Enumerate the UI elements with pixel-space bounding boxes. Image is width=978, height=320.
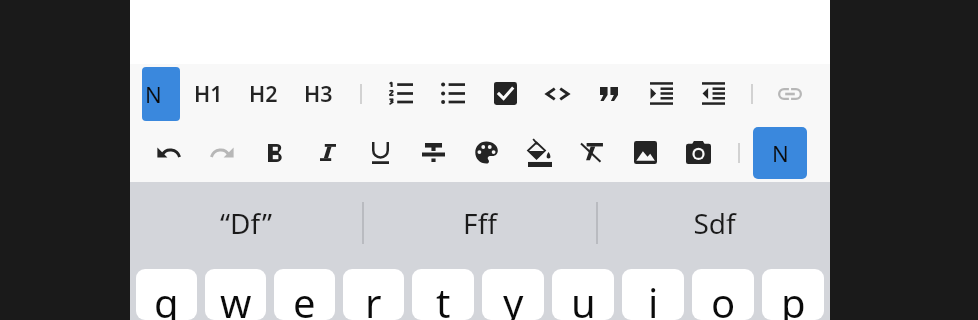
button[interactable]: Redo [195,123,248,182]
staticText: i [648,275,659,320]
button[interactable]: i [622,269,684,320]
button[interactable]: Text colour [460,123,513,182]
staticText: H1 [194,79,223,108]
button[interactable]: Italic [301,123,354,182]
staticText: “Df” [220,204,272,242]
button[interactable]: y [482,269,544,320]
button[interactable]: Fff [364,182,596,264]
staticText: H2 [249,79,278,108]
button[interactable]: o [692,269,754,320]
staticText: N [772,138,789,168]
button[interactable]: “Df” [130,182,362,264]
button[interactable]: q [136,269,197,320]
button[interactable]: H1 [180,64,236,123]
button[interactable]: Insert link [764,64,816,123]
staticText: N [145,79,162,109]
button[interactable]: Strikethrough [407,123,460,182]
staticText: o [711,275,736,320]
button[interactable]: Underline [354,123,407,182]
button[interactable]: Numbered list [375,64,427,123]
button[interactable]: H2 [236,64,291,123]
button[interactable]: e [274,269,335,320]
button[interactable]: p [762,269,824,320]
button[interactable]: H3 [291,64,346,123]
button[interactable]: Decrease indent [687,64,739,123]
button[interactable]: Block quote [583,64,635,123]
staticText: u [571,275,596,320]
button[interactable]: Undo [142,123,195,182]
staticText: Sdf [693,204,736,242]
button[interactable]: Highlight colour [513,123,566,182]
staticText: y [503,275,524,320]
button[interactable]: r [343,269,404,320]
staticText: t [436,275,451,320]
staticText: w [220,275,252,320]
button[interactable]: Take photo [672,123,725,182]
staticText: H3 [304,79,333,108]
button[interactable]: Bulleted list [427,64,479,123]
staticText: p [781,275,806,320]
staticText: Fff [463,204,497,242]
button[interactable]: Bold [248,123,301,182]
staticText: r [365,275,382,320]
button[interactable]: Sdf [598,182,830,264]
button[interactable]: Clear formatting [566,123,619,182]
staticText: e [293,275,316,320]
button[interactable]: w [205,269,266,320]
button[interactable]: Checklist [479,64,531,123]
button[interactable]: N [142,67,180,121]
button[interactable]: t [412,269,474,320]
button[interactable]: Code block [531,64,583,123]
button[interactable]: Insert image [619,123,672,182]
button[interactable]: u [552,269,614,320]
button[interactable]: Increase indent [635,64,687,123]
button[interactable]: N [753,127,807,179]
staticText: q [154,275,179,320]
